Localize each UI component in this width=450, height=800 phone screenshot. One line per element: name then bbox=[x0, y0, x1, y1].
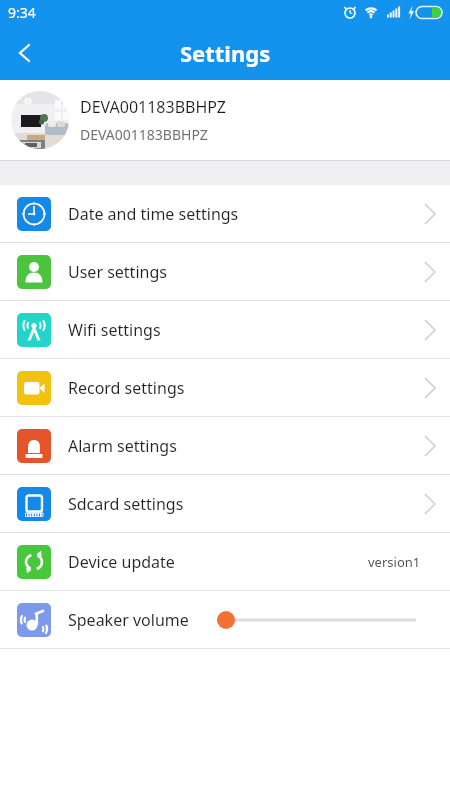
staticText: Settings bbox=[180, 38, 271, 68]
staticText: Date and time settings bbox=[68, 203, 239, 225]
button[interactable] bbox=[6, 35, 42, 71]
staticText: Wifi settings bbox=[68, 319, 161, 341]
button[interactable]: Date and time settings bbox=[0, 185, 450, 242]
staticText: User settings bbox=[68, 261, 167, 283]
button[interactable]: Device update bbox=[0, 533, 450, 590]
staticText: DEVA001183BBHPZ bbox=[80, 125, 208, 144]
staticText: Speaker volume bbox=[68, 609, 189, 631]
button[interactable]: Wifi settings bbox=[0, 301, 450, 358]
button[interactable]: User settings bbox=[0, 243, 450, 300]
staticText: DEVA001183BBHPZ bbox=[80, 96, 227, 118]
button[interactable]: DEVA001183BBHPZ bbox=[0, 80, 450, 160]
staticText: 9:34 bbox=[8, 3, 36, 22]
staticText: Alarm settings bbox=[68, 435, 177, 457]
staticText: version1 bbox=[368, 553, 421, 571]
staticText: Sdcard settings bbox=[68, 493, 184, 515]
button[interactable]: Record settings bbox=[0, 359, 450, 416]
staticText: Device update bbox=[68, 551, 175, 573]
button[interactable]: Alarm settings bbox=[0, 417, 450, 474]
button[interactable]: Speaker volume bbox=[0, 591, 450, 648]
staticText: Record settings bbox=[68, 377, 185, 399]
button[interactable]: Sdcard settings bbox=[0, 475, 450, 532]
